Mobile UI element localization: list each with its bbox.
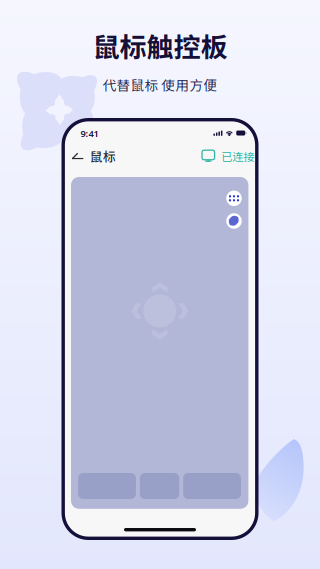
button[interactable]: Disable scrolling <box>226 213 242 229</box>
staticText: 已连接 <box>221 148 254 164</box>
staticText: 鼠标 <box>90 147 116 165</box>
staticText: 鼠标触控板 <box>92 26 227 65</box>
button[interactable]: 鼠标 <box>72 146 132 166</box>
button[interactable]: 已连接 <box>207 149 255 163</box>
staticText: 9:41 <box>80 127 98 139</box>
staticText: 代替鼠标 使用方便 <box>102 75 217 94</box>
button[interactable]: Keyboard <box>226 191 242 206</box>
